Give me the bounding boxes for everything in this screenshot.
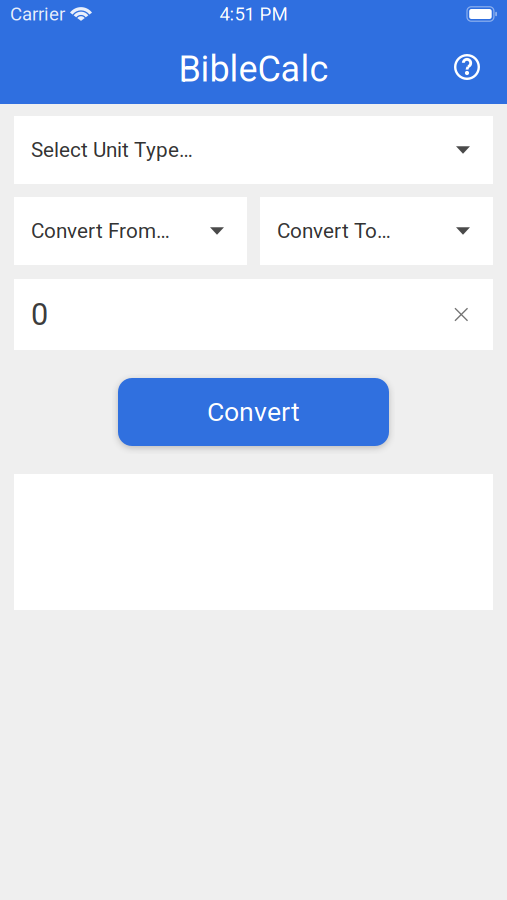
button[interactable]: Convert From… xyxy=(14,197,247,265)
staticText: 0 xyxy=(31,296,48,332)
button[interactable]: Select Unit Type… xyxy=(14,116,493,184)
staticText: Carrier xyxy=(10,3,65,25)
staticText: Convert xyxy=(207,396,300,428)
button[interactable]: Clear xyxy=(446,300,476,329)
staticText: 4:51 PM xyxy=(219,3,287,25)
staticText: Select Unit Type… xyxy=(31,138,193,162)
button[interactable]: Convert To… xyxy=(260,197,493,265)
staticText: BibleCalc xyxy=(178,48,328,90)
button[interactable]: Help xyxy=(440,28,507,104)
button[interactable]: Convert xyxy=(118,378,389,446)
staticText: Convert To… xyxy=(277,219,391,243)
staticText: Convert From… xyxy=(31,219,170,243)
